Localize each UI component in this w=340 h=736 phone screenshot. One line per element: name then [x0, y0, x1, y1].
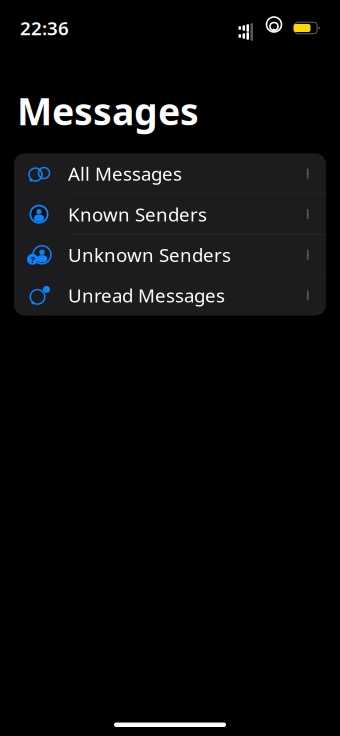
- button[interactable]: Known Senders: [14, 194, 326, 234]
- staticText: 22:36: [20, 16, 69, 40]
- button[interactable]: All Messages: [14, 154, 326, 194]
- staticText: Messages: [17, 86, 199, 136]
- staticText: ?: [30, 253, 34, 265]
- staticText: Known Senders: [68, 202, 207, 227]
- staticText: Unknown Senders: [68, 242, 231, 267]
- button[interactable]: ?: [14, 235, 326, 275]
- staticText: All Messages: [68, 161, 182, 186]
- button[interactable]: Unread Messages: [14, 275, 326, 315]
- staticText: Unread Messages: [68, 283, 225, 308]
